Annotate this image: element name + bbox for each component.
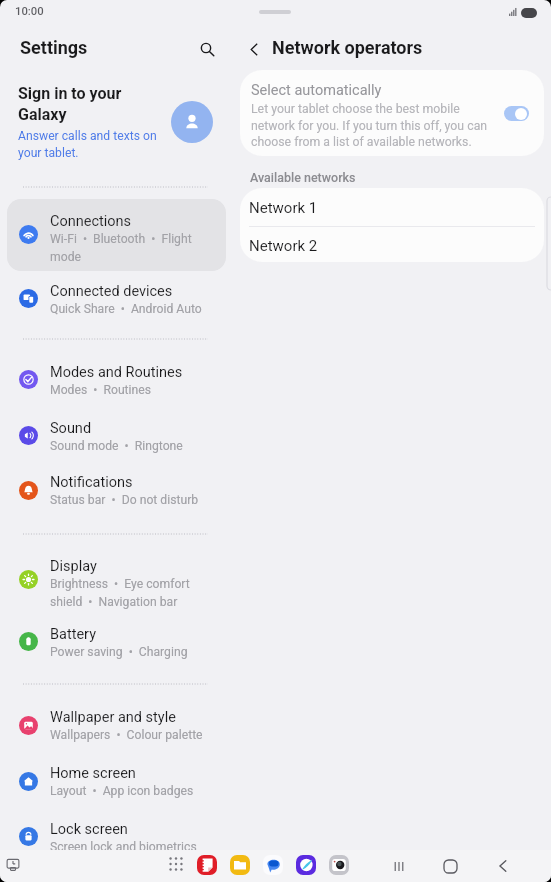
button[interactable] [7, 554, 226, 606]
button[interactable]: All apps [168, 856, 184, 872]
staticText: Network 1 [249, 199, 318, 217]
staticText: Available networks [250, 170, 356, 185]
staticText: Connected devices [50, 283, 173, 300]
staticText: Select automatically [251, 82, 382, 99]
staticText: Modes • Routines [50, 383, 152, 397]
button[interactable] [7, 362, 226, 398]
button[interactable]: Sign in to your Galaxy [18, 84, 168, 160]
staticText: Sound mode • Ringtone [50, 439, 183, 453]
button[interactable] [7, 418, 226, 454]
staticText: Lock screen [50, 821, 128, 838]
staticText: 10:00 [15, 5, 44, 18]
button[interactable]: App 1 [197, 855, 217, 875]
staticText: Status bar • Do not disturb [50, 493, 199, 507]
button[interactable]: App 5 [329, 855, 349, 875]
button[interactable] [7, 819, 226, 855]
staticText: Sound [50, 420, 92, 437]
button[interactable] [7, 281, 226, 317]
staticText: Modes and Routines [50, 364, 183, 381]
button[interactable] [7, 209, 226, 261]
staticText: Brightness • Eye comfort shield • Naviga… [50, 577, 190, 609]
button[interactable] [7, 763, 226, 799]
staticText: Screen lock and biometrics [50, 840, 197, 854]
staticText: Wi-Fi • Bluetooth • Flight mode [50, 232, 192, 264]
staticText: Display [50, 558, 97, 575]
staticText: Quick Share • Android Auto [50, 302, 202, 316]
button[interactable]: Screenshot [4, 856, 22, 874]
button[interactable] [7, 472, 226, 508]
button[interactable] [7, 624, 226, 660]
button[interactable]: Select automatically [504, 106, 529, 121]
staticText: Wallpaper and style [50, 709, 176, 726]
staticText: Battery [50, 626, 96, 643]
button[interactable]: Back [493, 856, 513, 876]
staticText: Connections [50, 213, 132, 230]
staticText: Network operators [272, 37, 423, 58]
staticText: Home screen [50, 765, 136, 782]
staticText: Network 2 [249, 237, 318, 255]
button[interactable]: Network 2 [240, 227, 544, 262]
button[interactable]: Back [240, 35, 268, 63]
staticText: Sign in to your Galaxy [18, 84, 122, 124]
button[interactable]: Network 1 [240, 188, 544, 226]
button[interactable]: App 2 [230, 855, 250, 875]
button[interactable]: Recents [389, 856, 409, 876]
button[interactable]: Search [192, 34, 222, 64]
button[interactable] [7, 707, 226, 743]
staticText: Answer calls and texts on your tablet. [18, 129, 157, 160]
staticText: Settings [20, 37, 88, 58]
button[interactable]: App 3 [263, 855, 283, 875]
button[interactable] [171, 101, 213, 143]
staticText: Power saving • Charging [50, 645, 188, 659]
staticText: Let your tablet choose the best mobile n… [251, 102, 488, 149]
staticText: Wallpapers • Colour palette [50, 728, 203, 742]
staticText: Notifications [50, 474, 133, 491]
button[interactable]: App 4 [296, 855, 316, 875]
staticText: Layout • App icon badges [50, 784, 194, 798]
button[interactable] [240, 70, 544, 156]
button[interactable]: Home [440, 856, 460, 876]
